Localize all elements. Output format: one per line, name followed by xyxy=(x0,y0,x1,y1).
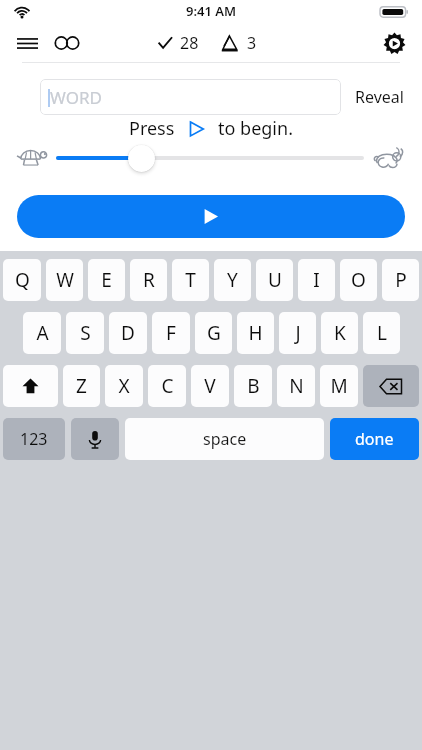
staticText: 28 xyxy=(180,32,199,54)
staticText: 123 xyxy=(20,428,48,450)
button[interactable]: I xyxy=(298,259,335,301)
staticText: S xyxy=(80,320,91,346)
button[interactable]: F xyxy=(152,312,190,354)
staticText: O xyxy=(351,267,366,293)
staticText: C xyxy=(161,373,174,399)
staticText: L xyxy=(377,320,387,346)
button[interactable]: W xyxy=(46,259,83,301)
button[interactable]: 3 xyxy=(218,27,260,59)
staticText: Y xyxy=(227,267,238,293)
button[interactable]: M xyxy=(320,365,358,407)
button[interactable]: P xyxy=(382,259,419,301)
staticText: N xyxy=(289,373,304,399)
button[interactable]: R xyxy=(130,259,167,301)
staticText: 9:41 AM xyxy=(186,2,237,20)
staticText: K xyxy=(334,320,346,346)
button[interactable]: Menu xyxy=(10,26,44,60)
button[interactable]: Play xyxy=(17,195,405,238)
staticText: E xyxy=(101,267,112,293)
button[interactable]: Reading glasses xyxy=(48,26,86,60)
staticText: A xyxy=(36,320,49,346)
button[interactable]: C xyxy=(148,365,186,407)
button[interactable]: Shift xyxy=(3,365,58,407)
staticText: M xyxy=(330,373,348,399)
button[interactable]: N xyxy=(277,365,315,407)
button[interactable]: Dictate xyxy=(71,418,119,460)
staticText: F xyxy=(166,320,176,346)
button[interactable]: Z xyxy=(63,365,100,407)
staticText: Press xyxy=(129,116,175,141)
button[interactable]: 28 xyxy=(154,27,202,59)
button[interactable]: D xyxy=(109,312,147,354)
button[interactable]: Settings xyxy=(374,24,414,62)
staticText: V xyxy=(204,373,216,399)
staticText: B xyxy=(247,373,260,399)
button[interactable]: S xyxy=(66,312,104,354)
staticText: Reveal xyxy=(355,86,404,108)
button[interactable]: Speed xyxy=(128,145,155,172)
button[interactable]: L xyxy=(363,312,400,354)
button[interactable]: X xyxy=(105,365,143,407)
button[interactable]: done xyxy=(330,418,419,460)
staticText: P xyxy=(395,267,407,293)
button[interactable]: G xyxy=(195,312,232,354)
button[interactable]: Reveal xyxy=(353,78,406,116)
staticText: WORD xyxy=(50,86,102,109)
button[interactable]: A xyxy=(23,312,61,354)
staticText: Q xyxy=(15,267,30,293)
button[interactable]: WORD xyxy=(40,79,341,115)
staticText: space xyxy=(203,428,247,450)
button[interactable]: V xyxy=(191,365,229,407)
button[interactable]: Backspace xyxy=(363,365,419,407)
button[interactable]: 123 xyxy=(3,418,65,460)
button[interactable]: Q xyxy=(3,259,41,301)
button[interactable]: K xyxy=(321,312,358,354)
staticText: X xyxy=(118,373,130,399)
button[interactable]: J xyxy=(279,312,316,354)
button[interactable]: B xyxy=(234,365,272,407)
button[interactable]: U xyxy=(256,259,293,301)
button[interactable]: Y xyxy=(214,259,251,301)
staticText: W xyxy=(56,267,74,293)
staticText: to begin. xyxy=(218,116,293,141)
staticText: G xyxy=(207,320,221,346)
staticText: H xyxy=(248,320,263,346)
staticText: R xyxy=(143,267,155,293)
button[interactable]: O xyxy=(340,259,377,301)
staticText: Z xyxy=(76,373,87,399)
button[interactable]: T xyxy=(172,259,209,301)
button[interactable]: space xyxy=(125,418,324,460)
button[interactable]: H xyxy=(237,312,274,354)
button[interactable]: E xyxy=(88,259,125,301)
staticText: J xyxy=(295,320,301,346)
staticText: T xyxy=(185,267,196,293)
staticText: D xyxy=(121,320,135,346)
staticText: U xyxy=(268,267,282,293)
staticText: I xyxy=(313,267,320,293)
staticText: done xyxy=(355,428,394,450)
staticText: 3 xyxy=(247,32,257,54)
